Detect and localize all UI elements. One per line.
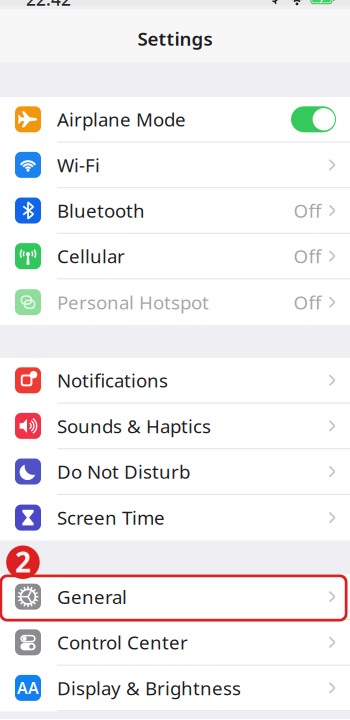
staticText: Cellular — [57, 244, 125, 268]
staticText: Settings — [137, 26, 212, 51]
staticText: Display & Brightness — [57, 675, 241, 700]
staticText: Do Not Disturb — [57, 459, 190, 484]
button[interactable]: AA — [0, 666, 350, 711]
staticText: Off — [293, 290, 321, 315]
staticText: AA — [17, 677, 39, 698]
staticText: Bluetooth — [57, 198, 145, 223]
button[interactable]: Sounds & Haptics — [0, 404, 350, 449]
button[interactable]: Airplane Mode — [0, 97, 350, 143]
staticText: Personal Hotspot — [57, 290, 209, 315]
button[interactable]: Screen Time — [0, 495, 350, 540]
staticText: Notifications — [57, 368, 168, 393]
staticText: Off — [293, 198, 321, 223]
button[interactable]: Do Not Disturb — [0, 449, 350, 495]
staticText: Sounds & Haptics — [57, 413, 211, 438]
staticText: 2 — [15, 543, 31, 580]
staticText: Off — [293, 244, 321, 268]
button[interactable]: Control Center — [0, 620, 350, 666]
staticText: Airplane Mode — [57, 107, 186, 132]
staticText: General — [57, 584, 127, 609]
staticText: Wi-Fi — [57, 152, 100, 177]
button[interactable]: Cellular — [0, 234, 350, 279]
button[interactable]: Bluetooth — [0, 188, 350, 234]
staticText: 22:42 — [26, 0, 71, 10]
staticText: Screen Time — [57, 505, 165, 530]
button[interactable]: General — [0, 574, 350, 620]
button[interactable]: Notifications — [0, 358, 350, 404]
staticText: Control Center — [57, 630, 188, 655]
button[interactable]: Wi-Fi — [0, 143, 350, 188]
button[interactable]: Personal Hotspot — [0, 279, 350, 325]
